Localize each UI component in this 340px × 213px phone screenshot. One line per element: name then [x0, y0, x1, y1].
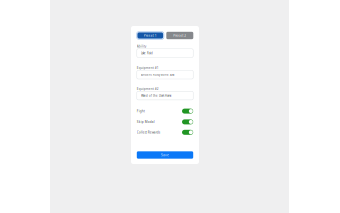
button[interactable]: Fight: [137, 108, 193, 114]
staticText: Fight: [137, 109, 145, 113]
staticText: Preset 1: [144, 33, 157, 38]
staticText: Ancient Rusty Bone Axe: [141, 73, 175, 76]
button[interactable]: Lake Raid: [137, 49, 193, 57]
button[interactable]: Wand of the Dark Flame: [137, 91, 193, 100]
staticText: Skip Modal: [137, 120, 155, 124]
button[interactable]: Save: [137, 151, 193, 159]
staticText: Equipment #2: [137, 87, 159, 91]
staticText: Preset 2: [173, 33, 186, 38]
staticText: Save: [161, 153, 169, 157]
button[interactable]: Preset 1: [137, 32, 164, 39]
button[interactable]: Skip Modal: [137, 119, 193, 124]
staticText: Lake Raid: [141, 51, 153, 55]
staticText: Collect Rewards: [137, 130, 160, 134]
button[interactable]: Collect Rewards: [137, 130, 193, 135]
staticText: Equipment #1: [137, 66, 159, 70]
button[interactable]: Preset 2: [166, 32, 193, 39]
staticText: Wand of the Dark Flame: [141, 94, 172, 97]
staticText: Ability: [137, 44, 147, 48]
button[interactable]: Ancient Rusty Bone Axe: [137, 70, 193, 79]
